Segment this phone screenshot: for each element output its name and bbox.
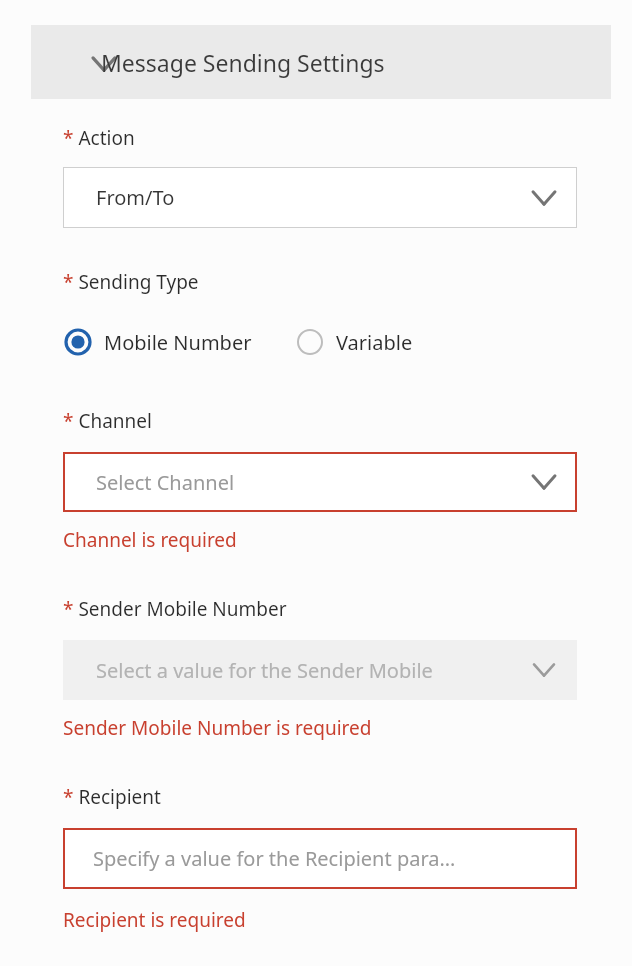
staticText: Recipient is required — [63, 907, 246, 933]
button[interactable]: Mobile Number — [60, 325, 256, 359]
staticText: Mobile Number — [104, 329, 252, 356]
staticText: Channel is required — [63, 527, 237, 553]
staticText: Select a value for the Sender Mobile — [96, 657, 433, 684]
staticText: Message Sending Settings — [101, 47, 385, 78]
staticText: * Recipient — [63, 784, 161, 810]
staticText: * Sender Mobile Number — [63, 596, 287, 622]
staticText: Sender Mobile Number is required — [63, 715, 372, 741]
staticText: Specify a value for the Recipient para… — [93, 845, 456, 872]
button[interactable]: Specify a value for the Recipient para… — [63, 828, 577, 889]
button[interactable]: Select a value for the Sender Mobile — [63, 640, 577, 700]
button[interactable]: Select Channel — [63, 452, 577, 512]
staticText: * Action — [63, 125, 135, 151]
other: Collapse section — [88, 48, 120, 80]
staticText: Select Channel — [96, 469, 235, 496]
button[interactable]: Variable — [292, 325, 417, 359]
button[interactable]: From/To — [63, 167, 577, 228]
staticText: * Channel — [63, 408, 152, 434]
staticText: Variable — [336, 329, 413, 356]
staticText: From/To — [96, 184, 175, 211]
button[interactable]: Collapse section — [31, 25, 611, 99]
staticText: * Sending Type — [63, 269, 199, 295]
